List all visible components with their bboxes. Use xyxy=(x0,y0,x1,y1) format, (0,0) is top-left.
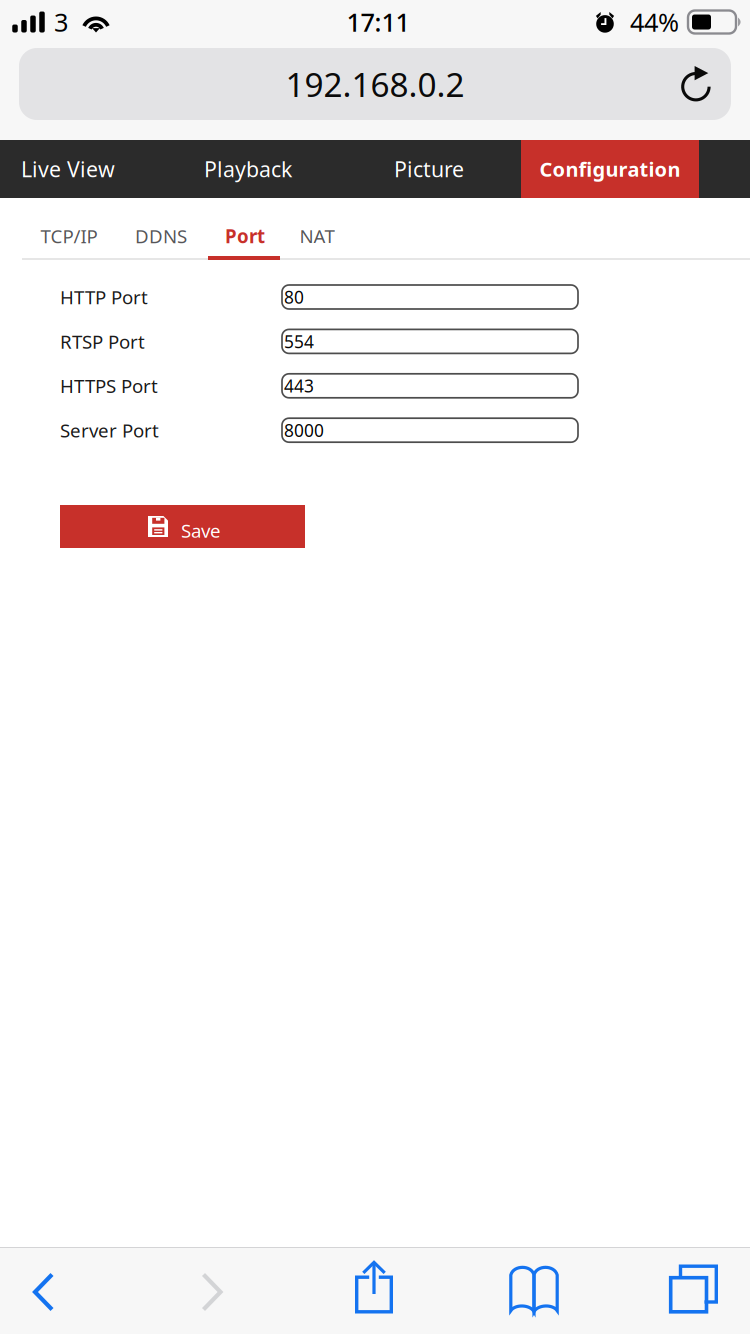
button[interactable]: Reload xyxy=(663,48,727,120)
staticText: Configuration xyxy=(539,156,680,182)
button[interactable]: TCP/IP xyxy=(21,198,117,255)
staticText: 554 xyxy=(284,330,314,353)
staticText: 3 xyxy=(54,5,68,39)
button[interactable]: Back xyxy=(0,1248,93,1334)
staticText: 80 xyxy=(284,285,304,308)
button[interactable]: Picture xyxy=(349,140,509,198)
staticText: 17:11 xyxy=(346,5,409,39)
button[interactable]: Live View xyxy=(0,140,136,198)
button[interactable]: Tabs xyxy=(643,1248,743,1334)
button[interactable]: Save xyxy=(60,505,305,548)
button[interactable]: NAT xyxy=(278,198,356,255)
button[interactable]: Playback xyxy=(158,140,338,198)
staticText: HTTPS Port xyxy=(60,373,158,398)
staticText: 192.168.0.2 xyxy=(285,62,464,106)
staticText: HTTP Port xyxy=(60,285,148,309)
staticText: Picture xyxy=(394,155,464,183)
button[interactable]: Port xyxy=(209,198,281,255)
button[interactable]: Configuration xyxy=(521,140,699,198)
staticText: TCP/IP xyxy=(40,224,97,248)
staticText: Port xyxy=(225,224,265,248)
staticText: Save xyxy=(181,518,221,543)
staticText: Playback xyxy=(204,155,292,183)
button[interactable]: Bookmarks xyxy=(484,1248,584,1334)
staticText: NAT xyxy=(299,224,334,248)
button[interactable]: Share xyxy=(324,1248,424,1334)
staticText: RTSP Port xyxy=(60,329,145,354)
staticText: 44% xyxy=(630,5,679,39)
staticText: Live View xyxy=(21,155,115,183)
staticText: Server Port xyxy=(60,418,159,443)
staticText: 8000 xyxy=(284,419,324,442)
button[interactable]: DDNS xyxy=(115,198,207,255)
staticText: DDNS xyxy=(135,224,187,248)
staticText: 443 xyxy=(284,374,314,397)
button[interactable]: Forward xyxy=(162,1248,262,1334)
